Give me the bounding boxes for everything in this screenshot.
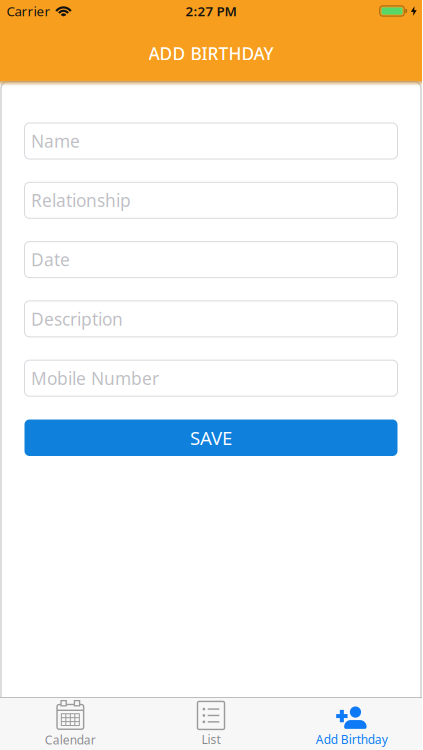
staticText: ADD BIRTHDAY — [148, 42, 273, 65]
staticText: Add Birthday — [316, 731, 388, 747]
staticText: Mobile Number — [31, 367, 159, 390]
staticText: Calendar — [45, 732, 96, 748]
button[interactable]: SAVE — [24, 419, 397, 456]
button[interactable]: Name — [24, 123, 397, 159]
button[interactable]: Mobile Number — [24, 360, 397, 396]
staticText: Carrier — [6, 2, 50, 20]
staticText: Description — [31, 307, 123, 330]
staticText: SAVE — [190, 425, 232, 450]
button[interactable]: Description — [24, 301, 397, 337]
staticText: Relationship — [31, 189, 131, 212]
staticText: List — [201, 731, 220, 747]
staticText: Date — [31, 248, 70, 271]
staticText: Name — [31, 129, 80, 152]
button[interactable]: List — [141, 698, 281, 749]
staticText: 2:27 PM — [185, 2, 236, 20]
button[interactable]: Add Birthday — [281, 698, 422, 749]
button[interactable]: Date — [24, 242, 397, 278]
button[interactable]: Calendar — [0, 698, 141, 749]
button[interactable]: Relationship — [24, 182, 397, 218]
